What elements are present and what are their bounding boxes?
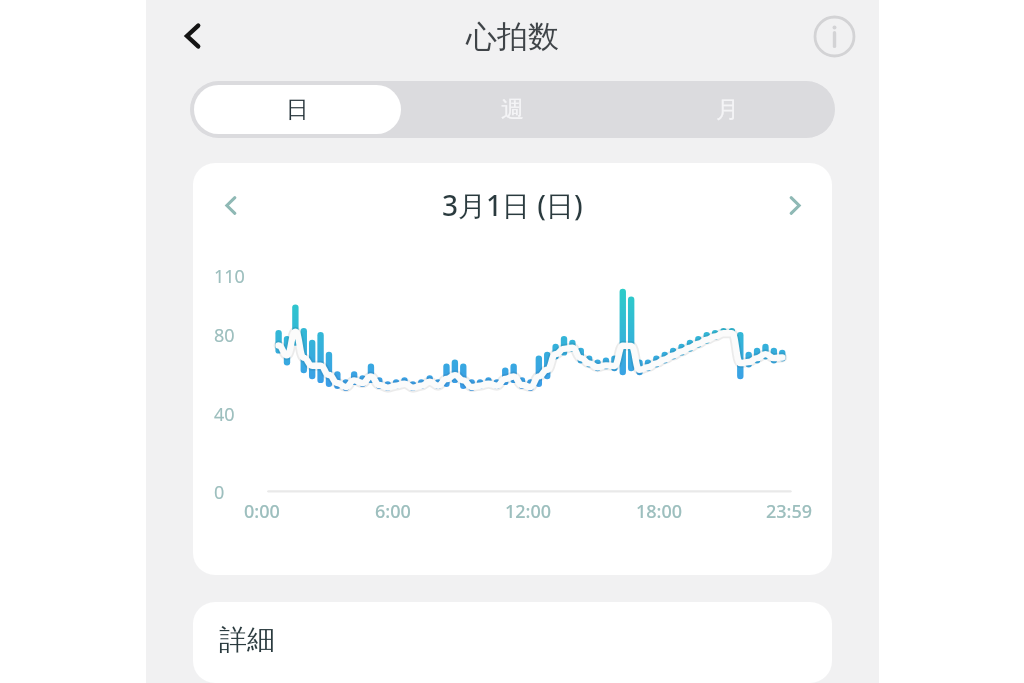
button[interactable]: Previous day — [209, 183, 253, 227]
staticText: 18:00 — [636, 499, 683, 524]
button[interactable]: 詳細 — [193, 602, 832, 683]
staticText: 詳細 — [219, 622, 275, 657]
staticText: 23:59 — [766, 499, 813, 524]
button[interactable]: Next day — [772, 183, 816, 227]
staticText: 40 — [214, 402, 235, 427]
button[interactable]: 日 — [194, 85, 401, 134]
button[interactable]: Back — [170, 13, 216, 59]
staticText: 3月1日 (日) — [442, 186, 583, 224]
staticText: 心拍数 — [466, 17, 559, 56]
staticText: 80 — [214, 323, 235, 348]
staticText: 週 — [501, 95, 524, 124]
staticText: 0 — [214, 480, 225, 505]
staticText: 110 — [214, 264, 245, 289]
button[interactable]: Information — [810, 12, 858, 60]
button[interactable]: 週 — [409, 85, 616, 134]
staticText: 日 — [286, 95, 309, 124]
staticText: 0:00 — [244, 499, 280, 524]
staticText: 12:00 — [505, 499, 552, 524]
button[interactable]: 月 — [624, 85, 831, 134]
staticText: 6:00 — [375, 499, 411, 524]
staticText: 月 — [716, 95, 739, 124]
